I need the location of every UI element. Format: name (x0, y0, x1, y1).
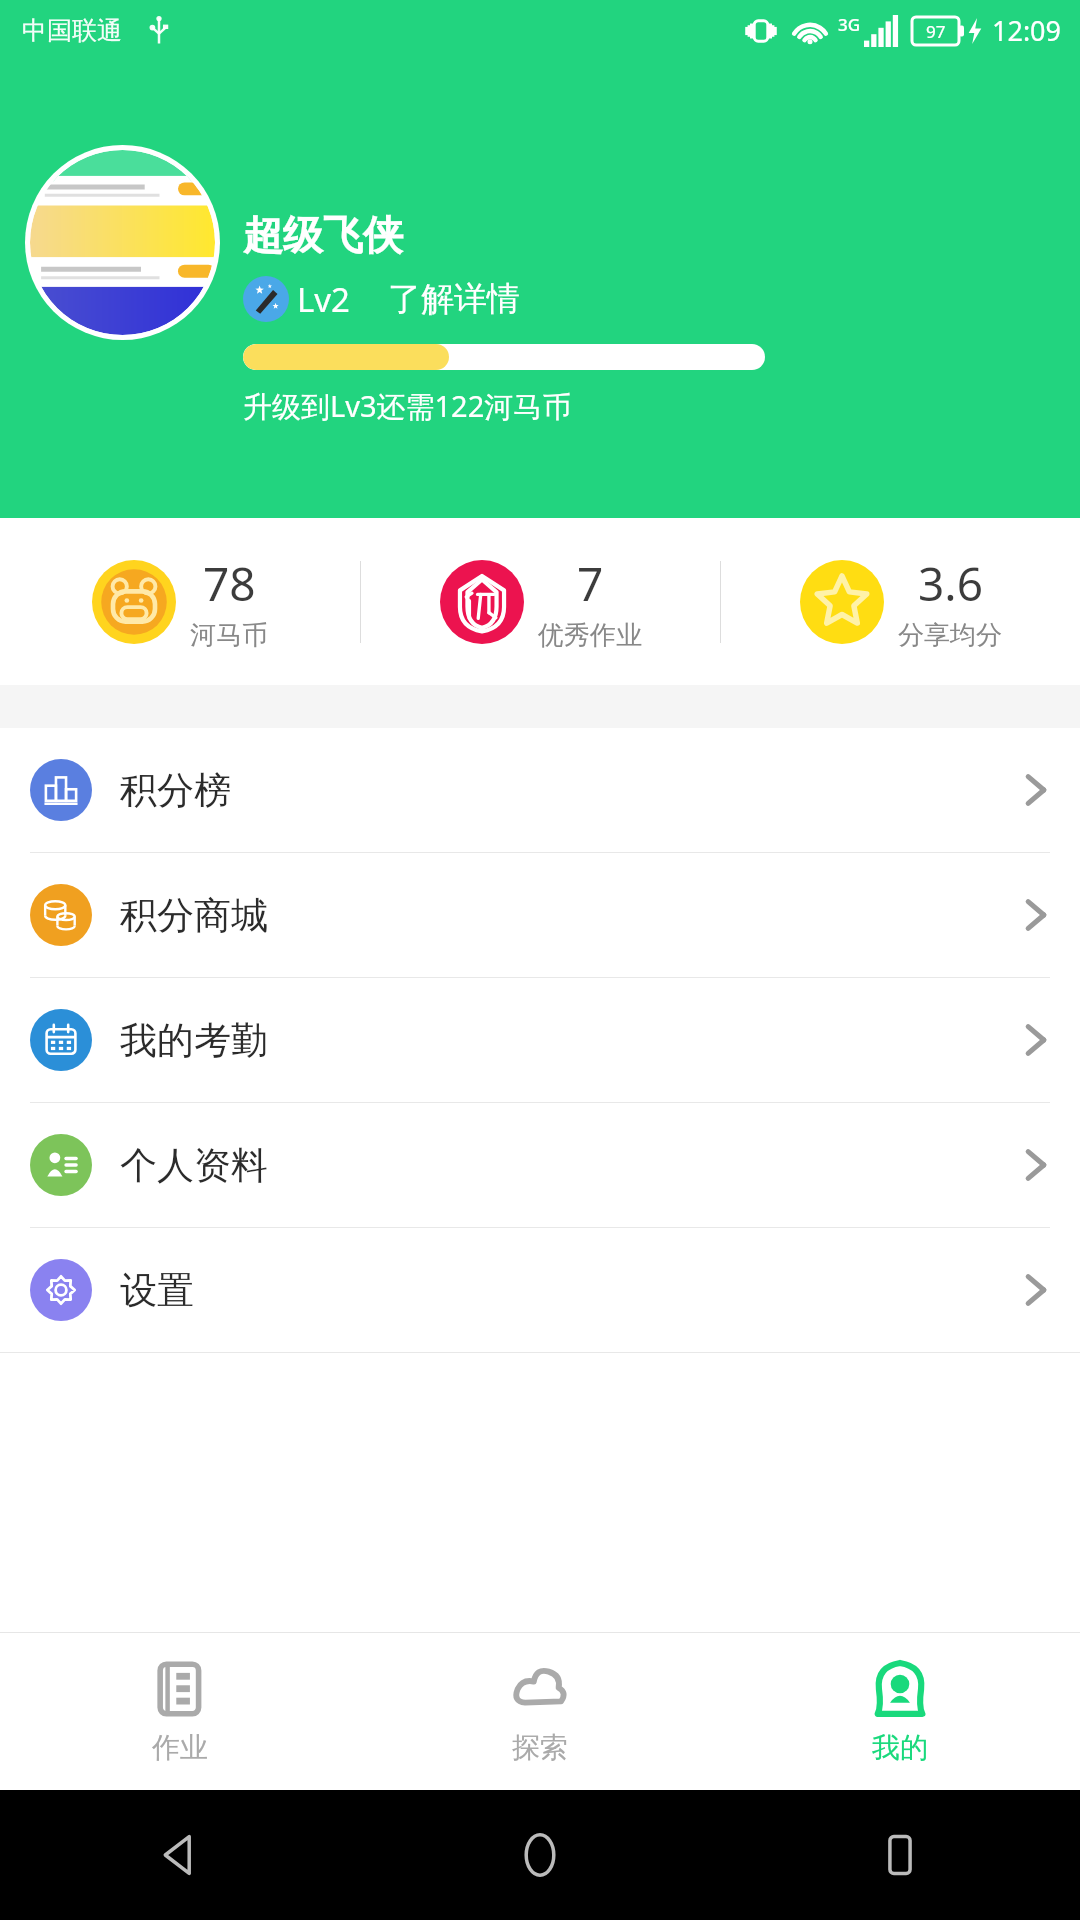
staticText: 12:09 (992, 12, 1062, 49)
staticText: 3.6 (918, 552, 983, 615)
staticText: 我的考勤 (120, 1017, 268, 1064)
staticText: 97 (926, 20, 946, 43)
staticText: 积分商城 (120, 892, 268, 939)
button[interactable]: 我的考勤 (0, 978, 1080, 1102)
staticText: 河马币 (190, 619, 268, 652)
button[interactable]: 我的 (720, 1633, 1080, 1790)
staticText: 中国联通 (22, 15, 122, 46)
staticText: 分享均分 (898, 619, 1002, 652)
staticText: 探索 (512, 1730, 568, 1765)
staticText: 积分榜 (120, 767, 231, 814)
button[interactable]: 探索 (360, 1633, 720, 1790)
button[interactable]: 78 (0, 518, 360, 685)
button[interactable]: 个人资料 (0, 1103, 1080, 1227)
button[interactable]: Back (148, 1823, 212, 1887)
staticText: 超级飞侠 (243, 210, 403, 260)
staticText: 3G (838, 13, 861, 36)
staticText: 了解详情 (388, 278, 520, 320)
staticText: 优秀作业 (538, 619, 642, 652)
staticText: 升级到Lv3还需122河马币 (243, 386, 572, 426)
staticText: 78 (203, 552, 256, 615)
button[interactable]: 7 (361, 518, 720, 685)
staticText: 我的 (872, 1730, 928, 1765)
staticText: 个人资料 (120, 1142, 268, 1189)
staticText: 作业 (152, 1730, 208, 1765)
staticText: 7 (577, 552, 604, 615)
button[interactable]: Home (508, 1823, 572, 1887)
button[interactable]: Recents (868, 1823, 932, 1887)
button[interactable]: 设置 (0, 1228, 1080, 1352)
button[interactable]: 作业 (0, 1633, 360, 1790)
button[interactable]: 积分榜 (0, 728, 1080, 852)
button[interactable]: 积分商城 (0, 853, 1080, 977)
button[interactable]: 3.6 (721, 518, 1080, 685)
staticText: Lv2 (297, 277, 350, 322)
staticText: 设置 (120, 1267, 194, 1314)
button[interactable]: Avatar (30, 150, 215, 335)
button[interactable]: 了解详情 (388, 278, 520, 320)
